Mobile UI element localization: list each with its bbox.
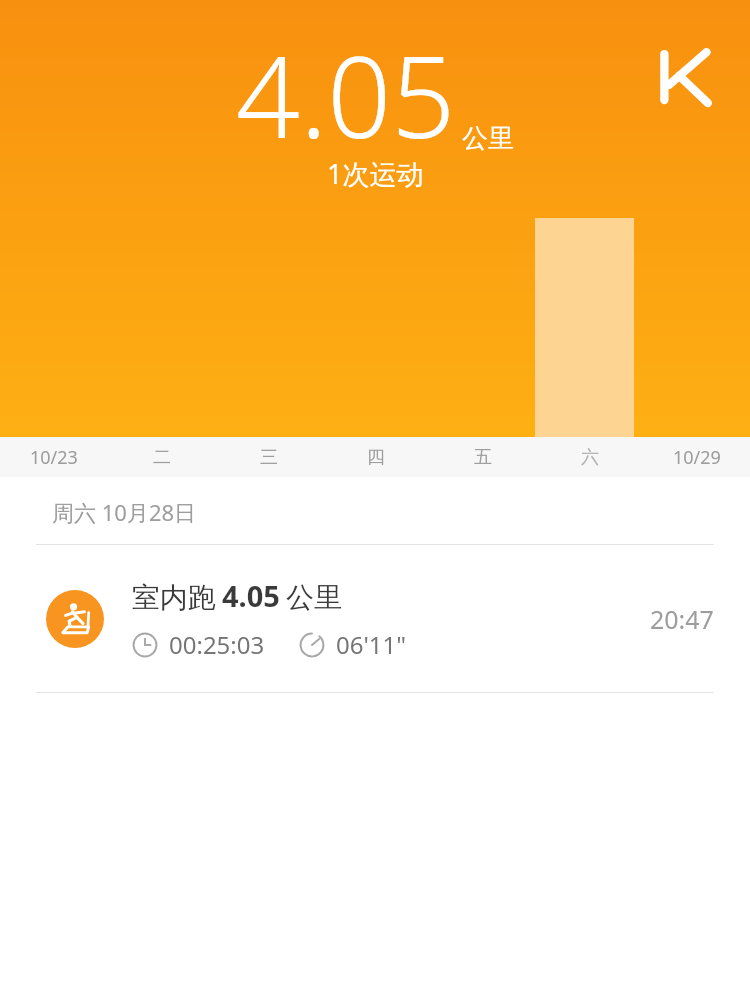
staticText: 室内跑 xyxy=(132,580,216,615)
button[interactable]: 五 xyxy=(429,437,536,477)
staticText: 4.05 xyxy=(222,576,280,615)
staticText: 五 xyxy=(474,446,492,469)
button[interactable]: Keep xyxy=(652,46,714,108)
staticText: 公里 xyxy=(286,580,342,615)
staticText: 周六 10月28日 xyxy=(52,497,197,527)
button[interactable]: 10/23 xyxy=(0,437,108,477)
staticText: 20:47 xyxy=(650,602,714,636)
staticText: 10/29 xyxy=(673,445,721,470)
staticText: 00:25:03 xyxy=(169,628,265,661)
staticText: 六 xyxy=(581,446,599,469)
button[interactable]: 三 xyxy=(215,437,322,477)
button[interactable]: 二 xyxy=(108,437,215,477)
staticText: 二 xyxy=(153,446,171,469)
staticText: 三 xyxy=(260,446,278,469)
staticText: 公里 xyxy=(462,122,514,155)
button[interactable]: 10/29 xyxy=(643,437,750,477)
staticText: 06'11" xyxy=(336,628,407,661)
staticText: 4.05 xyxy=(236,18,456,171)
staticText: 1次运动 xyxy=(327,155,424,192)
button[interactable]: 六 xyxy=(536,437,643,477)
staticText: 10/23 xyxy=(30,445,78,470)
button[interactable]: 四 xyxy=(322,437,429,477)
button[interactable]: 室内跑 xyxy=(0,545,750,692)
staticText: 四 xyxy=(367,446,385,469)
